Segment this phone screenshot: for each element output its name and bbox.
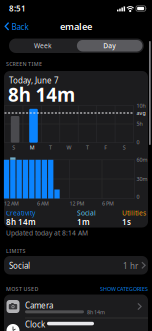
staticText: 1 hr <box>123 261 138 271</box>
staticText: Day <box>103 41 116 50</box>
staticText: 8h 14m <box>87 309 105 316</box>
button[interactable]: Day <box>77 40 142 51</box>
staticText: F <box>104 144 107 151</box>
staticText: 6 AM <box>37 200 49 207</box>
staticText: Week <box>34 41 52 50</box>
staticText: S <box>123 144 126 151</box>
staticText: 30m <box>136 175 147 183</box>
button[interactable]: SHOW CATEGORIES <box>84 285 148 293</box>
staticText: Creativity <box>6 209 35 217</box>
staticText: Social <box>77 209 96 217</box>
staticText: W <box>66 144 71 151</box>
staticText: 8:51 <box>9 3 26 14</box>
staticText: M <box>30 144 35 151</box>
staticText: 0 <box>136 139 139 146</box>
staticText: 6 PM <box>102 200 114 207</box>
staticText: Today, June 7 <box>9 75 59 86</box>
staticText: 12 PM <box>69 200 84 207</box>
staticText: T <box>86 144 89 151</box>
staticText: 12 AM <box>4 200 19 207</box>
staticText: 8h 14m <box>8 82 75 107</box>
staticText: Updated today at 8:14 AM <box>6 229 88 237</box>
staticText: 1m <box>77 217 90 227</box>
staticText: 5h <box>136 120 142 127</box>
staticText: avg <box>136 109 145 117</box>
button[interactable]: Camera <box>4 296 148 317</box>
button[interactable]: Clock <box>4 318 148 331</box>
staticText: Back <box>11 21 28 32</box>
staticText: SHOW CATEGORIES <box>100 285 148 293</box>
button[interactable]: Week <box>10 40 76 51</box>
staticText: S <box>12 144 15 151</box>
staticText: 10h <box>136 102 145 109</box>
staticText: Social <box>9 260 30 271</box>
staticText: Clock <box>25 319 45 330</box>
staticText: 0 <box>136 193 139 200</box>
staticText: 60m <box>136 156 147 163</box>
staticText: Camera <box>25 300 53 311</box>
staticText: 1s <box>122 217 131 227</box>
staticText: Utilities <box>122 209 146 217</box>
button[interactable]: Social <box>4 256 148 274</box>
button[interactable]: Back <box>3 19 37 34</box>
staticText: emalee <box>60 20 92 33</box>
staticText: LIMITS <box>6 247 25 255</box>
staticText: MOST USED <box>6 285 38 293</box>
staticText: SCREEN TIME <box>6 60 42 68</box>
staticText: T <box>49 144 52 151</box>
staticText: 8h 14m <box>6 217 36 227</box>
